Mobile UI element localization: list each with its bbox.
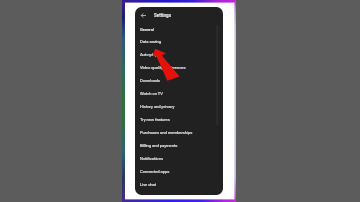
button[interactable]: Data saving: [135, 35, 223, 48]
button[interactable]: Downloads: [135, 74, 223, 87]
staticText: Video quality preferences: [140, 65, 186, 70]
button[interactable]: Video quality preferences: [135, 61, 223, 74]
staticText: Watch on TV: [140, 91, 163, 96]
staticText: Data saving: [140, 39, 162, 44]
staticText: Live chat: [140, 182, 157, 187]
button[interactable]: Back: [140, 12, 147, 19]
button[interactable]: Back: [135, 7, 223, 24]
staticText: Auto-play: [140, 52, 157, 57]
button[interactable]: History and privacy: [135, 100, 223, 113]
staticText: Notifications: [140, 156, 164, 161]
button[interactable]: Watch on TV: [135, 87, 223, 100]
button[interactable]: Try new features: [135, 113, 223, 126]
button[interactable]: Notifications: [135, 152, 223, 165]
button[interactable]: Auto-play: [135, 48, 223, 61]
staticText: History and privacy: [140, 104, 175, 109]
staticText: Downloads: [140, 78, 161, 83]
staticText: Purchases and memberships: [140, 130, 193, 135]
staticText: Try new features: [140, 117, 170, 122]
button[interactable]: Billing and payments: [135, 139, 223, 152]
staticText: Connected apps: [140, 169, 170, 174]
staticText: Settings: [154, 13, 171, 18]
button[interactable]: Purchases and memberships: [135, 126, 223, 139]
staticText: Billing and payments: [140, 143, 178, 148]
staticText: General: [140, 27, 154, 32]
button[interactable]: Connected apps: [135, 165, 223, 178]
button[interactable]: Live chat: [135, 178, 223, 191]
